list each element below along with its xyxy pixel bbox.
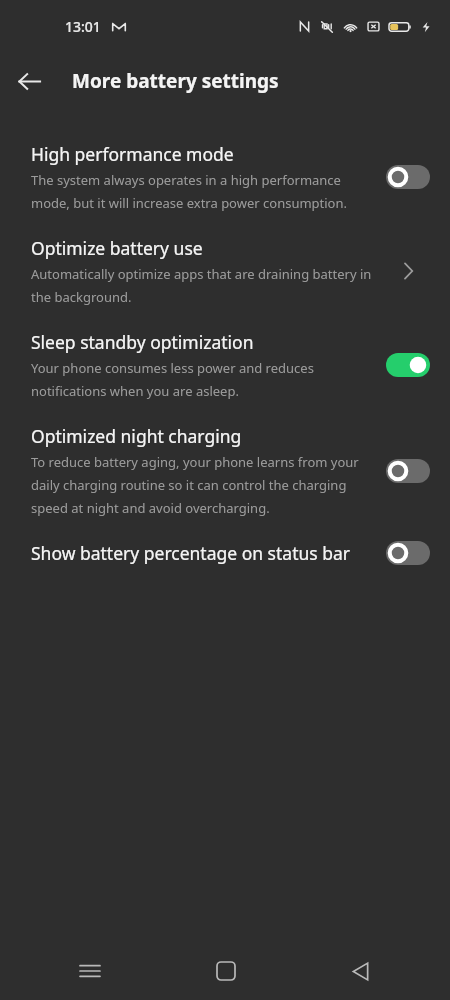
button[interactable]: Toggle off bbox=[386, 459, 430, 483]
button[interactable]: Toggle on bbox=[386, 353, 430, 377]
staticText: Optimize battery use bbox=[31, 236, 203, 260]
staticText: High performance mode bbox=[31, 142, 234, 166]
button[interactable]: Optimized night charging bbox=[0, 412, 450, 529]
staticText: To reduce battery aging, your phone lear… bbox=[31, 453, 372, 517]
button[interactable]: Show battery percentage on status bar bbox=[0, 529, 450, 577]
button[interactable]: Open bbox=[386, 259, 430, 283]
button[interactable]: High performance mode bbox=[0, 130, 450, 224]
staticText: The system always operates in a high per… bbox=[31, 171, 372, 212]
staticText: More battery settings bbox=[72, 68, 279, 94]
staticText: Show battery percentage on status bar bbox=[31, 541, 351, 565]
staticText: 13:01 bbox=[65, 17, 101, 36]
button[interactable]: Toggle off bbox=[386, 165, 430, 189]
button[interactable]: Back bbox=[0, 52, 58, 110]
button[interactable]: Toggle off bbox=[386, 541, 430, 565]
button[interactable]: Sleep standby optimization bbox=[0, 318, 450, 412]
staticText: Optimized night charging bbox=[31, 424, 242, 448]
button[interactable]: Optimize battery use bbox=[0, 224, 450, 318]
button[interactable]: Recent apps bbox=[22, 942, 158, 1000]
staticText: Sleep standby optimization bbox=[31, 330, 254, 354]
button[interactable]: Home bbox=[158, 942, 293, 1000]
staticText: Automatically optimize apps that are dra… bbox=[31, 265, 372, 306]
button[interactable]: Back bbox=[293, 942, 428, 1000]
staticText: Your phone consumes less power and reduc… bbox=[31, 359, 372, 400]
